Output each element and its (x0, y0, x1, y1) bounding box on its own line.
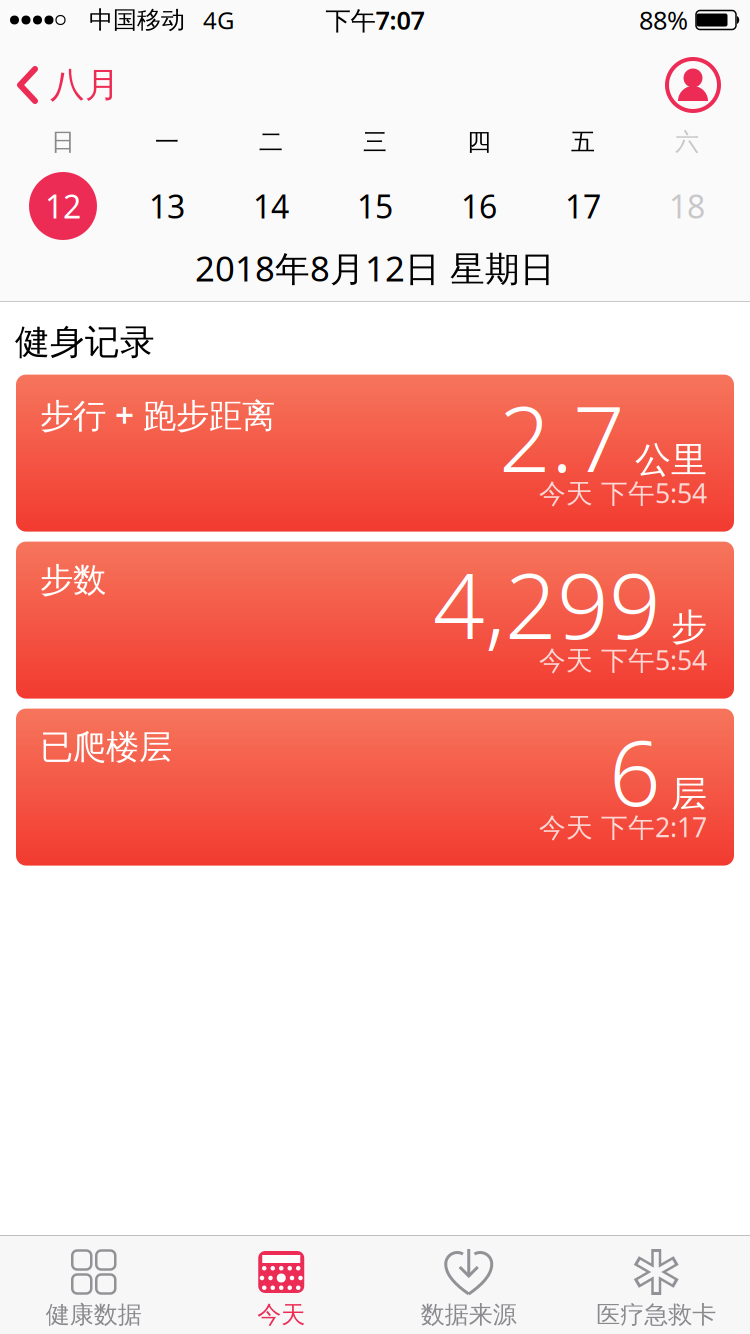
staticText: 四 (467, 127, 491, 157)
button[interactable]: 已爬楼层 (16, 709, 734, 866)
staticText: 2018年8月12日 星期日 (195, 245, 555, 291)
staticText: 今天 下午5:54 (539, 642, 707, 678)
staticText: 4,299 (433, 544, 661, 664)
button[interactable]: 8月16日 (427, 172, 531, 240)
staticText: 17 (565, 185, 601, 227)
button[interactable]: 返回 八月 (17, 64, 120, 106)
staticText: 4G (203, 4, 234, 36)
staticText: 二 (259, 127, 283, 157)
button[interactable]: 8月17日 (531, 172, 635, 240)
staticText: 三 (363, 127, 387, 157)
staticText: 今天 下午5:54 (539, 475, 707, 511)
staticText: 日 (51, 127, 75, 157)
button[interactable]: 数据来源 (375, 1249, 562, 1329)
staticText: 18 (669, 185, 705, 227)
staticText: 中国移动 (89, 5, 185, 35)
staticText: 88% (639, 3, 688, 37)
staticText: 16 (461, 185, 497, 227)
staticText: 今天 (257, 1300, 305, 1329)
button[interactable]: 8月12日 (11, 172, 115, 240)
staticText: 公里 (635, 438, 707, 482)
staticText: 八月 (50, 64, 120, 106)
button[interactable]: 8月13日 (115, 172, 219, 240)
button[interactable]: 8月18日 (635, 172, 739, 240)
staticText: 14 (253, 185, 289, 227)
staticText: 五 (571, 127, 595, 157)
staticText: 六 (675, 127, 699, 157)
staticText: 一 (155, 127, 179, 157)
staticText: 2.7 (499, 377, 625, 497)
button[interactable]: 今天 (187, 1249, 375, 1329)
staticText: 层 (671, 772, 707, 816)
staticText: 13 (149, 185, 185, 227)
staticText: 数据来源 (421, 1300, 517, 1329)
staticText: 步 (671, 605, 707, 649)
button[interactable]: 8月15日 (323, 172, 427, 240)
button[interactable]: 健康数据 (0, 1249, 187, 1329)
staticText: 医疗急救卡 (596, 1300, 716, 1329)
staticText: 已爬楼层 (40, 727, 172, 767)
staticText: 今天 下午2:17 (539, 809, 707, 845)
button[interactable]: 步行 + 跑步距离 (16, 375, 734, 532)
staticText: 12 (45, 185, 81, 227)
staticText: 健身记录 (15, 321, 155, 364)
staticText: 下午7:07 (325, 3, 424, 37)
staticText: 6 (609, 711, 661, 831)
button[interactable]: 个人资料 (667, 59, 719, 111)
button[interactable]: 8月14日 (219, 172, 323, 240)
staticText: 步数 (40, 560, 106, 600)
button[interactable]: 步数 (16, 542, 734, 699)
staticText: 健康数据 (46, 1300, 142, 1329)
staticText: 步行 + 跑步距离 (40, 393, 275, 437)
button[interactable]: 医疗急救卡 (562, 1249, 750, 1329)
staticText: 15 (357, 185, 393, 227)
